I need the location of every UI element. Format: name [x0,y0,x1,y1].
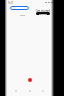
button[interactable]: Location marker [28,78,32,82]
staticText: Get started [36,9,50,13]
button[interactable]: Explore [14,89,18,93]
button[interactable]: Contribute [41,89,45,93]
staticText: Continue [39,13,47,15]
button[interactable]: Search here [10,6,29,10]
staticText: 9:41 [8,1,14,5]
button[interactable]: Saved [28,89,32,93]
staticText: View [20,13,26,16]
staticText: Search here [13,7,27,10]
button[interactable]: Continue [36,12,50,15]
